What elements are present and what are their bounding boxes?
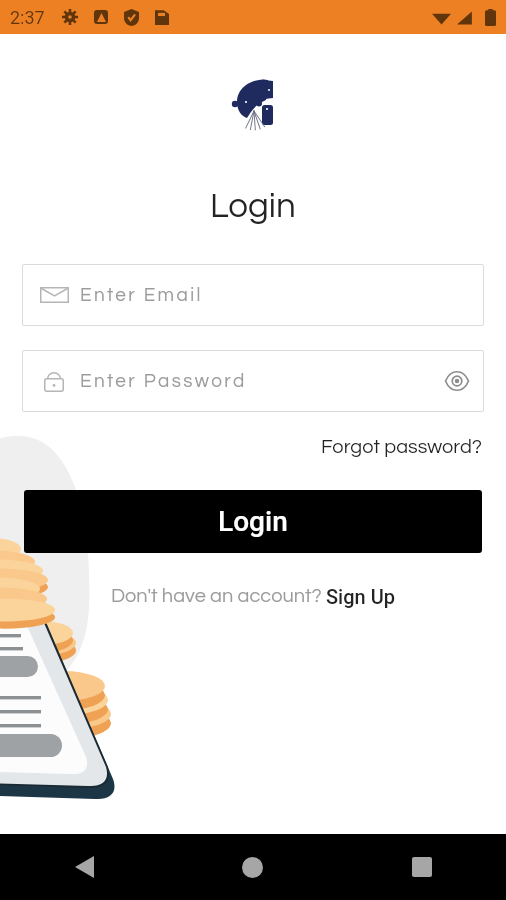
staticText: Don't have an account? [111,586,326,607]
button[interactable]: Recents [337,834,506,900]
button[interactable]: Back [0,834,168,900]
button[interactable]: Sign Up [326,585,395,608]
staticText: Login [210,188,296,224]
staticText: Enter Email [80,285,203,305]
staticText: Sign Up [326,585,395,608]
staticText: Enter Password [80,371,247,391]
button[interactable]: Enter Email [22,264,484,326]
staticText: 2:37 [10,7,45,28]
button[interactable]: Forgot password? [319,435,485,460]
button[interactable]: Show password [442,366,472,396]
button[interactable]: Login [24,490,482,553]
staticText: Login [218,505,288,538]
button[interactable]: Home [168,834,337,900]
button[interactable]: Enter Password [22,350,484,412]
staticText: Forgot password? [321,437,483,458]
